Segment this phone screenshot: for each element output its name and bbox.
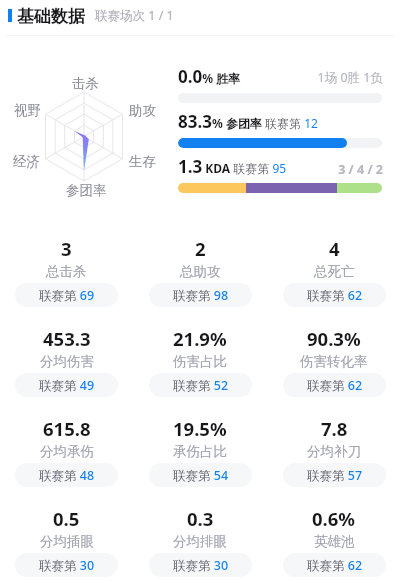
staticText: 总死亡 [314,263,355,280]
staticText: 3 / 4 / 2 [178,161,383,178]
staticText: 19.5% [173,416,227,441]
button[interactable]: 7.8 [267,416,401,487]
staticText: 0.3 [187,506,214,531]
staticText: 453.3 [43,326,91,351]
staticText: 伤害占比 [173,353,227,370]
staticText: 参团率 [66,182,107,199]
staticText: 21.9% [173,326,227,351]
button[interactable]: 615.8 [0,416,133,487]
staticText: 视野 [14,102,41,119]
staticText: 经济 [13,153,40,170]
button[interactable]: 21.9% [133,326,267,397]
staticText: 0.0% 胜率 [178,65,241,88]
button[interactable]: 3 [0,236,133,307]
button[interactable]: 2 [133,236,267,307]
staticText: 基础数据 [17,6,85,25]
staticText: 联赛第 62 [307,557,363,574]
staticText: 2 [195,236,206,261]
staticText: 4 [329,236,340,261]
staticText: 联赛第 57 [307,467,363,484]
staticText: 伤害转化率 [300,353,368,370]
button[interactable]: 19.5% [133,416,267,487]
button[interactable]: 453.3 [0,326,133,397]
staticText: 联赛第 98 [173,287,229,304]
staticText: 分均排眼 [173,533,227,550]
staticText: 0.6% [312,506,356,531]
button[interactable]: 90.3% [267,326,401,397]
staticText: 联赛第 48 [39,467,95,484]
staticText: 击杀 [72,75,99,92]
staticText: 总助攻 [180,263,221,280]
staticText: 1场 0胜 1负 [178,69,383,86]
staticText: 3 [61,236,72,261]
staticText: 联赛第 52 [173,377,229,394]
staticText: 615.8 [43,416,91,441]
staticText: 联赛第 30 [39,557,95,574]
staticText: 生存 [129,153,156,170]
staticText: 联赛第 49 [39,377,95,394]
staticText: 联赛第 54 [173,467,229,484]
staticText: 分均补刀 [307,443,361,460]
staticText: 分均伤害 [40,353,94,370]
staticText: 0.5 [53,506,80,531]
staticText: 联赛第 62 [307,377,363,394]
button[interactable]: 0.5 [0,506,133,577]
staticText: 1.3 KDA 联赛第 95 [178,155,287,178]
staticText: 承伤占比 [173,443,227,460]
staticText: 分均插眼 [40,533,94,550]
staticText: 联赛第 69 [39,287,95,304]
staticText: 英雄池 [314,533,355,550]
staticText: 90.3% [307,326,361,351]
button[interactable]: 0.3 [133,506,267,577]
staticText: 83.3% 参团率 联赛第 12 [178,110,318,133]
button[interactable]: 4 [267,236,401,307]
staticText: 联赛场次 1 / 1 [95,7,174,24]
staticText: 助攻 [129,102,156,119]
button[interactable]: 0.6% [267,506,401,577]
staticText: 联赛第 30 [173,557,229,574]
staticText: 7.8 [321,416,348,441]
staticText: 分均承伤 [40,443,94,460]
staticText: 总击杀 [46,263,87,280]
staticText: 联赛第 62 [307,287,363,304]
